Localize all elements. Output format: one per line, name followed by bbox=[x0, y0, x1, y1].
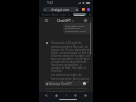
button[interactable]: Voice mode bbox=[83, 82, 86, 85]
button[interactable]: chatgpt.com bbox=[43, 7, 79, 12]
staticText: Standard bbox=[74, 13, 85, 16]
button[interactable]: Tabs bbox=[83, 93, 88, 98]
staticText: Browse Mode: Light bbox=[42, 13, 67, 17]
staticText: 9:41 bbox=[47, 1, 54, 5]
button[interactable]: New chat bbox=[84, 19, 87, 22]
button[interactable]: Bookmarks bbox=[73, 93, 78, 98]
button[interactable]: Extensions bbox=[82, 8, 85, 11]
staticText: ChatGPT peut faire des erreurs. Envisage… bbox=[45, 87, 87, 93]
staticText: ChatGPT bbox=[57, 18, 71, 23]
button[interactable]: Account bbox=[87, 8, 90, 11]
button[interactable]: Standard bbox=[73, 13, 86, 16]
staticText: Les valeurs normales de fonctionnement. … bbox=[51, 73, 92, 86]
button[interactable]: Back bbox=[44, 93, 49, 98]
button[interactable]: Share bbox=[64, 93, 69, 98]
staticText: Le BI agent levée libre pour un l'horair… bbox=[65, 24, 89, 33]
staticText: Message ChatGPT bbox=[49, 82, 72, 86]
staticText: chatgpt.com bbox=[51, 8, 70, 12]
staticText: Un taux de 2,49 agité de remboursement. … bbox=[51, 41, 92, 72]
button[interactable]: Home bbox=[54, 93, 59, 98]
button[interactable]: Open sidebar bbox=[45, 19, 48, 22]
button[interactable]: ChatGPT bbox=[57, 18, 74, 23]
button[interactable]: Browse Mode: Light bbox=[42, 13, 70, 17]
button[interactable]: Message ChatGPT bbox=[45, 81, 87, 86]
